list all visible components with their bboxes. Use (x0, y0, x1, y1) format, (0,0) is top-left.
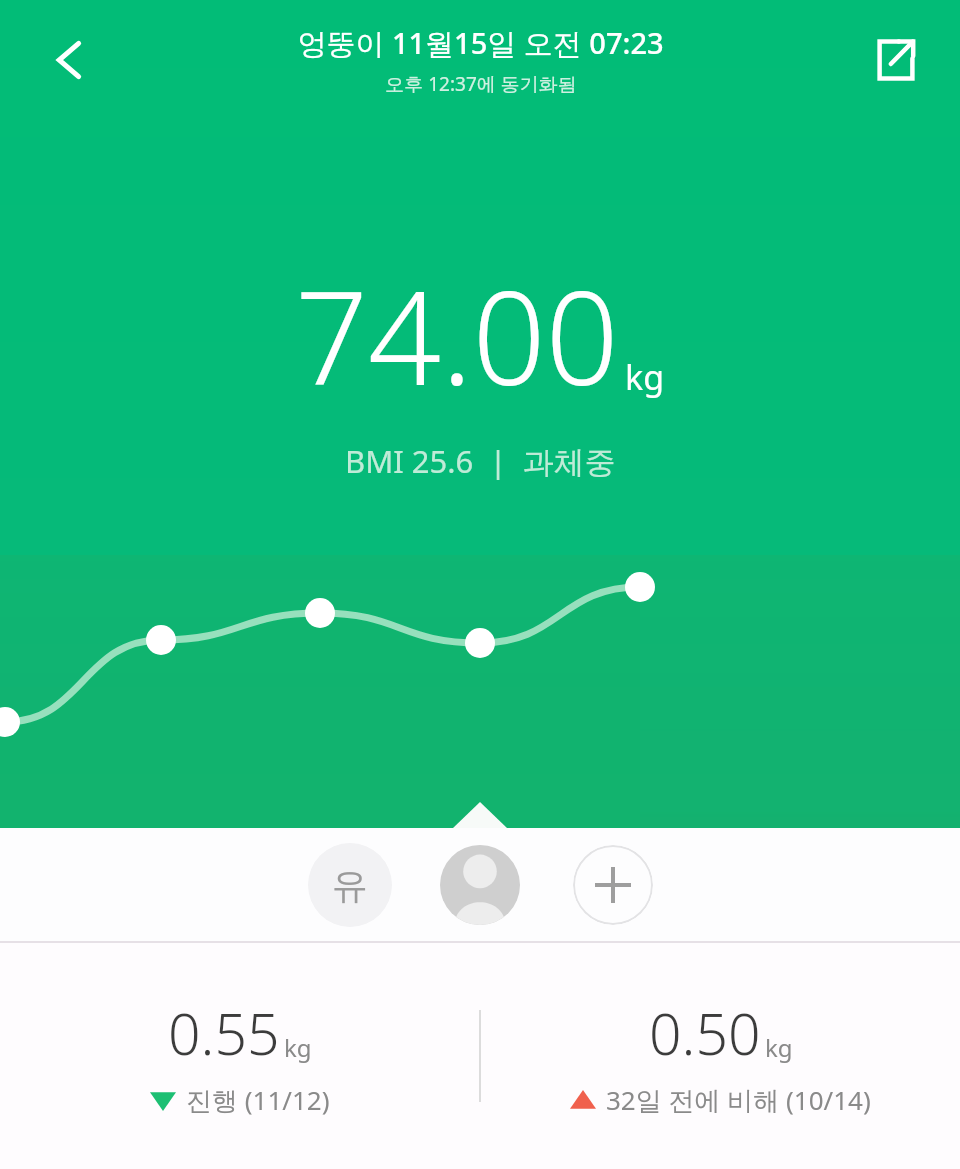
staticText: kg (625, 354, 665, 400)
button[interactable]: User 유 (308, 843, 392, 927)
button[interactable]: Add user (573, 845, 653, 925)
staticText: 엉뚱이 11월15일 오전 07:23 (297, 23, 664, 63)
button[interactable]: Back (34, 24, 106, 96)
staticText: 유 (332, 863, 368, 908)
staticText: 0.50 (649, 994, 761, 1072)
button[interactable]: Share (862, 28, 926, 92)
button[interactable]: Current profile (440, 845, 520, 925)
staticText: 진행 (11/12) (186, 1082, 330, 1118)
staticText: 32일 전에 비해 (10/14) (606, 1082, 871, 1118)
staticText: BMI 25.6 | 과체중 (345, 440, 616, 482)
staticText: 74.00 (295, 248, 619, 422)
button[interactable]: 0.50 (480, 943, 960, 1169)
staticText: 오후 12:37에 동기화됨 (385, 71, 577, 97)
button[interactable]: 0.55 (0, 943, 480, 1169)
staticText: kg (765, 1031, 793, 1064)
staticText: 0.55 (168, 994, 280, 1072)
staticText: kg (284, 1031, 312, 1064)
